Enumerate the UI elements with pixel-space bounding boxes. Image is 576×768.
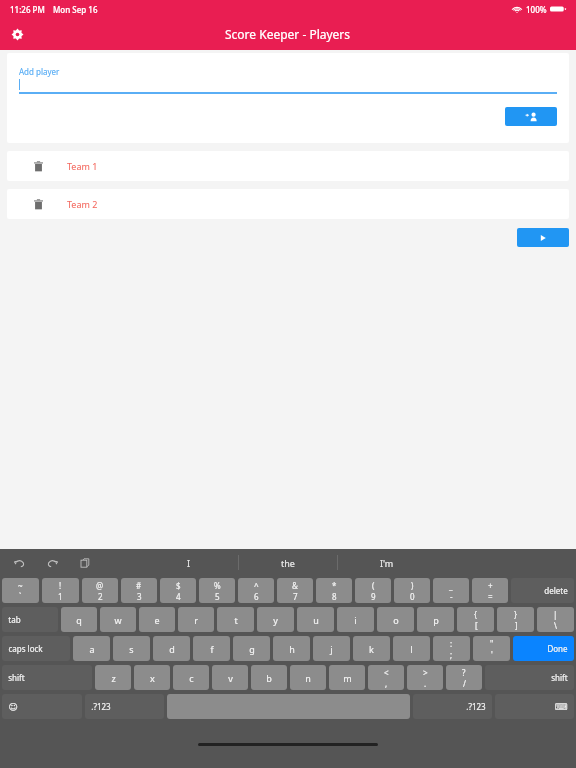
button[interactable]: v	[212, 665, 248, 690]
button[interactable]: ?	[446, 665, 482, 690]
button[interactable]: e	[139, 607, 175, 632]
button[interactable]: n	[290, 665, 326, 690]
button[interactable]: shift	[485, 665, 574, 690]
button[interactable]: Done	[513, 636, 574, 661]
staticText: *	[332, 580, 337, 591]
button[interactable]: Undo	[12, 556, 26, 570]
staticText: q	[76, 614, 82, 626]
button[interactable]: delete	[511, 578, 574, 603]
button[interactable]: #	[121, 578, 157, 603]
button[interactable]: u	[297, 607, 334, 632]
button[interactable]: {	[457, 607, 494, 632]
staticText: z	[111, 672, 116, 684]
button[interactable]: q	[61, 607, 97, 632]
button[interactable]: caps lock	[2, 636, 70, 661]
staticText: Team 2	[67, 198, 98, 210]
button[interactable]: &	[277, 578, 313, 603]
button[interactable]: Add player	[505, 107, 557, 126]
button[interactable]: shift	[2, 665, 92, 690]
button[interactable]: ^	[238, 578, 274, 603]
staticText: c	[189, 672, 194, 684]
staticText: Done	[547, 643, 568, 654]
staticText: 9	[371, 591, 376, 602]
button[interactable]: +	[472, 578, 508, 603]
button[interactable]: ☺	[2, 694, 82, 719]
button[interactable]: _	[433, 578, 469, 603]
button[interactable]: .?123	[85, 694, 164, 719]
staticText: ?	[462, 667, 466, 678]
button[interactable]: o	[377, 607, 414, 632]
button[interactable]: l	[393, 636, 430, 661]
staticText: .	[424, 678, 427, 689]
button[interactable]: $	[160, 578, 196, 603]
staticText: shift	[551, 672, 568, 683]
staticText: 3	[137, 591, 142, 602]
button[interactable]: tab	[2, 607, 58, 632]
button[interactable]: )	[394, 578, 430, 603]
staticText: /	[463, 678, 466, 689]
button[interactable]: !	[42, 578, 79, 603]
button[interactable]: Settings	[6, 23, 28, 45]
staticText: caps lock	[8, 643, 43, 654]
button[interactable]: a	[73, 636, 110, 661]
staticText: ,	[385, 678, 388, 689]
staticText: t	[234, 614, 238, 626]
button[interactable]: m	[329, 665, 365, 690]
staticText: n	[305, 672, 311, 684]
button[interactable]: Team 1	[7, 151, 569, 181]
button[interactable]: s	[113, 636, 150, 661]
button[interactable]: :	[433, 636, 470, 661]
button[interactable]: j	[313, 636, 350, 661]
button[interactable]: r	[178, 607, 214, 632]
button[interactable]: d	[153, 636, 190, 661]
button[interactable]: ⌨	[495, 694, 574, 719]
button[interactable]: y	[257, 607, 294, 632]
button[interactable]: |	[537, 607, 574, 632]
button[interactable]: Team 2	[7, 189, 569, 219]
button[interactable]: %	[199, 578, 235, 603]
button[interactable]: z	[95, 665, 131, 690]
staticText: the	[281, 557, 295, 569]
staticText: x	[150, 672, 155, 684]
button[interactable]: I'm	[338, 549, 436, 576]
staticText: b	[266, 672, 272, 684]
staticText: .?123	[91, 701, 111, 712]
staticText: j	[330, 643, 333, 655]
button[interactable]: *	[316, 578, 352, 603]
button[interactable]: >	[407, 665, 443, 690]
button[interactable]: i	[337, 607, 374, 632]
staticText: <	[384, 667, 389, 678]
button[interactable]: "	[473, 636, 510, 661]
button[interactable]: g	[233, 636, 270, 661]
staticText: %	[214, 580, 221, 591]
button[interactable]: (	[355, 578, 391, 603]
button[interactable]: b	[251, 665, 287, 690]
staticText: Score Keeper - Players	[225, 26, 351, 42]
button[interactable]: h	[273, 636, 310, 661]
button[interactable]: Start game	[517, 228, 569, 247]
staticText: 4	[176, 591, 181, 602]
button[interactable]: Redo	[45, 556, 59, 570]
button[interactable]: w	[100, 607, 136, 632]
button[interactable]: }	[497, 607, 534, 632]
button[interactable]: p	[417, 607, 454, 632]
button[interactable]: c	[173, 665, 209, 690]
staticText: "	[490, 638, 494, 649]
button[interactable]: .?123	[413, 694, 492, 719]
button[interactable]: x	[134, 665, 170, 690]
staticText: ^	[254, 580, 259, 591]
staticText: r	[194, 614, 198, 626]
button[interactable]: t	[217, 607, 254, 632]
button[interactable]: @	[82, 578, 118, 603]
button[interactable]: f	[193, 636, 230, 661]
staticText: ☺	[8, 702, 18, 712]
staticText: I'm	[380, 557, 394, 569]
button[interactable]: k	[353, 636, 390, 661]
button[interactable]: <	[368, 665, 404, 690]
button[interactable]: ~	[2, 578, 39, 603]
button[interactable]: the	[239, 549, 337, 576]
button[interactable]: I	[140, 549, 238, 576]
staticText: y	[273, 614, 278, 626]
button[interactable]: Paste	[78, 556, 92, 570]
